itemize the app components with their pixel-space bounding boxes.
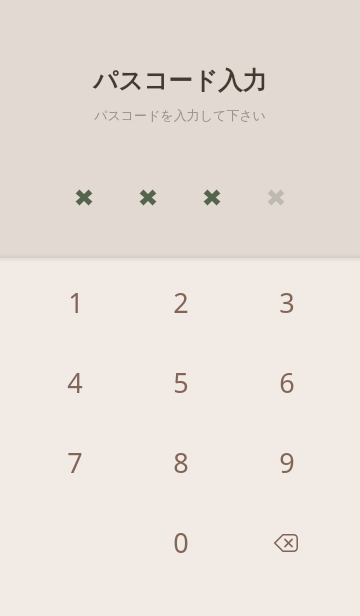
button[interactable]: Delete: [246, 514, 326, 570]
staticText: 4: [67, 364, 83, 401]
staticText: 8: [173, 444, 189, 481]
staticText: 6: [279, 364, 295, 401]
staticText: パスコード入力: [93, 65, 267, 96]
staticText: 0: [173, 524, 189, 561]
staticText: 1: [68, 284, 84, 321]
staticText: 3: [279, 284, 295, 321]
staticText: 2: [173, 284, 189, 321]
button[interactable]: 9: [246, 434, 326, 490]
button[interactable]: 5: [140, 354, 220, 410]
staticText: 7: [67, 444, 83, 481]
button[interactable]: 3: [246, 274, 326, 330]
button[interactable]: 0: [140, 514, 220, 570]
button[interactable]: 2: [140, 274, 220, 330]
button[interactable]: 6: [246, 354, 326, 410]
staticText: 9: [279, 444, 295, 481]
staticText: 5: [173, 364, 189, 401]
button[interactable]: 1: [34, 274, 114, 330]
staticText: パスコードを入力して下さい: [94, 107, 266, 123]
button[interactable]: 8: [140, 434, 220, 490]
button[interactable]: 7: [34, 434, 114, 490]
button[interactable]: 4: [34, 354, 114, 410]
